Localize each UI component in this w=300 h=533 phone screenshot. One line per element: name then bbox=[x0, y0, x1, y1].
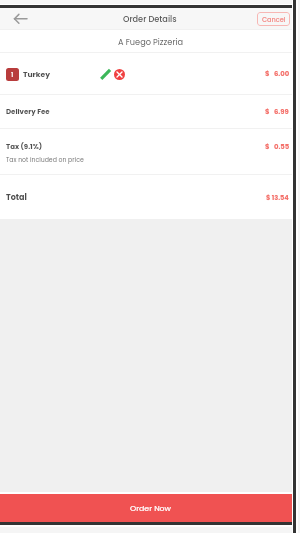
staticText: Tax not included on price bbox=[6, 155, 84, 164]
button[interactable]: Cancel bbox=[257, 12, 290, 26]
staticText: $ 13.54 bbox=[266, 193, 289, 202]
staticText: Delivery Fee bbox=[6, 107, 50, 117]
button[interactable]: Order Now bbox=[0, 494, 300, 522]
staticText: $ 6.99 bbox=[265, 107, 289, 117]
staticText: Order Now bbox=[130, 503, 171, 514]
staticText: Total bbox=[6, 192, 27, 203]
staticText: $ 6.00 bbox=[265, 69, 290, 79]
button[interactable]: Back bbox=[14, 12, 27, 25]
staticText: $ 0.55 bbox=[265, 142, 290, 152]
staticText: Turkey bbox=[23, 69, 51, 80]
button[interactable]: Remove item bbox=[114, 69, 125, 80]
button[interactable]: Edit item bbox=[99, 68, 112, 81]
staticText: Order Details bbox=[123, 13, 177, 24]
staticText: Cancel bbox=[262, 15, 286, 24]
staticText: A Fuego Pizzeria bbox=[118, 36, 183, 47]
staticText: Tax (9.1%) bbox=[6, 142, 43, 152]
staticText: 1 bbox=[11, 70, 14, 79]
